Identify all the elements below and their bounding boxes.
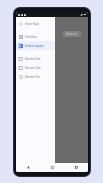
staticText: Home Page: [25, 22, 40, 26]
staticText: Element One: [25, 57, 41, 61]
button[interactable]: Show me: [55, 17, 88, 163]
button[interactable]: Element Tile: [16, 72, 55, 81]
staticText: Element Two: [25, 66, 41, 70]
button[interactable]: Grid View: [16, 32, 55, 41]
staticText: Element Tile: [25, 75, 40, 79]
staticText: Show me: [66, 32, 78, 36]
button[interactable]: Recents: [64, 163, 88, 172]
button[interactable]: Show me: [66, 32, 78, 36]
button[interactable]: Element One: [16, 54, 55, 63]
staticText: Screen Layouts: [25, 44, 44, 48]
button[interactable]: Element Two: [16, 63, 55, 72]
staticText: Grid View: [25, 35, 37, 39]
button[interactable]: Home: [40, 163, 64, 172]
button[interactable]: Home Page: [16, 19, 55, 28]
button[interactable]: Back: [16, 163, 40, 172]
button[interactable]: Screen Layouts: [16, 41, 55, 50]
